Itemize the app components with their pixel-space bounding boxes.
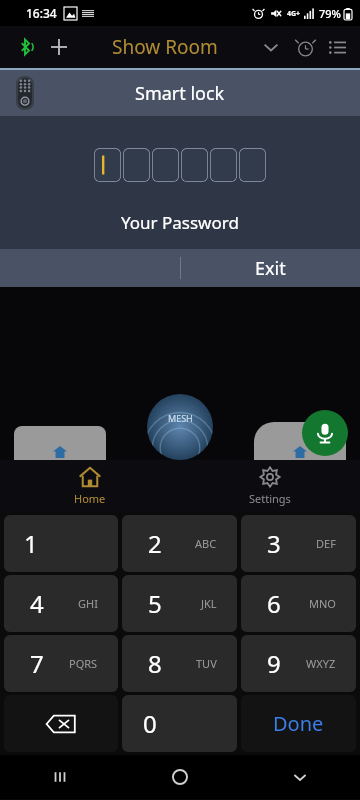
staticText: TUV [196,656,217,671]
staticText: 5 [148,587,162,620]
button[interactable]: MESH [147,394,213,460]
staticText: PQRS [69,656,98,671]
staticText: Exit [255,256,286,281]
button[interactable]: 3 [241,515,356,572]
staticText: GHI [78,596,98,611]
button[interactable]: 4 [4,575,118,632]
staticText: Done [273,710,324,737]
button[interactable]: 7 [4,635,118,692]
button[interactable] [254,422,346,460]
button[interactable]: Add [42,30,76,64]
staticText: 3 [267,527,281,560]
staticText: DEF [316,536,336,551]
button[interactable]: 9 [241,635,356,692]
button[interactable]: 2 [122,515,237,572]
button[interactable]: 8 [122,635,237,692]
button[interactable]: Hide keyboard [240,755,360,799]
staticText: WXYZ [306,656,336,671]
button[interactable]: Home [120,755,240,799]
staticText: Temperature sensor Temperatu… [50,74,300,96]
button[interactable] [181,148,208,182]
staticText: 79% [319,6,341,21]
button[interactable]: 5 [122,575,237,632]
staticText: Settings [249,491,291,506]
button[interactable]: 0 [122,695,237,752]
staticText: Show Room [112,34,218,60]
button[interactable]: Settings [180,460,360,512]
button[interactable]: Expand [254,30,288,64]
staticText: 4 [30,587,44,620]
staticText: 2 [148,527,162,560]
staticText: ABC [195,536,217,551]
staticText: 6 [267,587,281,620]
staticText: Home [74,491,106,506]
staticText: JKL [201,596,217,611]
button[interactable]: Timer [288,30,322,64]
button[interactable]: Recents [0,755,120,799]
button[interactable]: Exit [180,249,360,287]
button[interactable]: Home [0,460,180,512]
staticText: 0 [143,707,157,740]
button[interactable] [152,148,179,182]
button[interactable]: Backspace [4,695,118,752]
staticText: Smart lock [135,81,225,106]
staticText: 16:34: [4,74,50,96]
button[interactable]: Voice assistant [302,410,348,456]
button[interactable] [239,148,266,182]
staticText: 4G+ [287,9,301,19]
button[interactable]: 6 [241,575,356,632]
button[interactable] [14,426,106,460]
staticText: 7 [30,647,44,680]
button[interactable]: Bluetooth [8,30,42,64]
staticText: 9 [267,647,281,680]
button[interactable]: Done [241,695,356,752]
button[interactable]: Menu [322,32,352,62]
staticText: MESH [168,412,193,424]
button[interactable] [210,148,237,182]
staticText: MNO [309,596,336,611]
staticText: 8 [148,647,162,680]
button[interactable] [94,148,121,182]
staticText: 1 [24,527,38,560]
staticText: Your Password [121,211,239,234]
button[interactable] [123,148,150,182]
staticText: 16:34 [26,5,57,21]
button[interactable]: 1 [4,515,118,572]
